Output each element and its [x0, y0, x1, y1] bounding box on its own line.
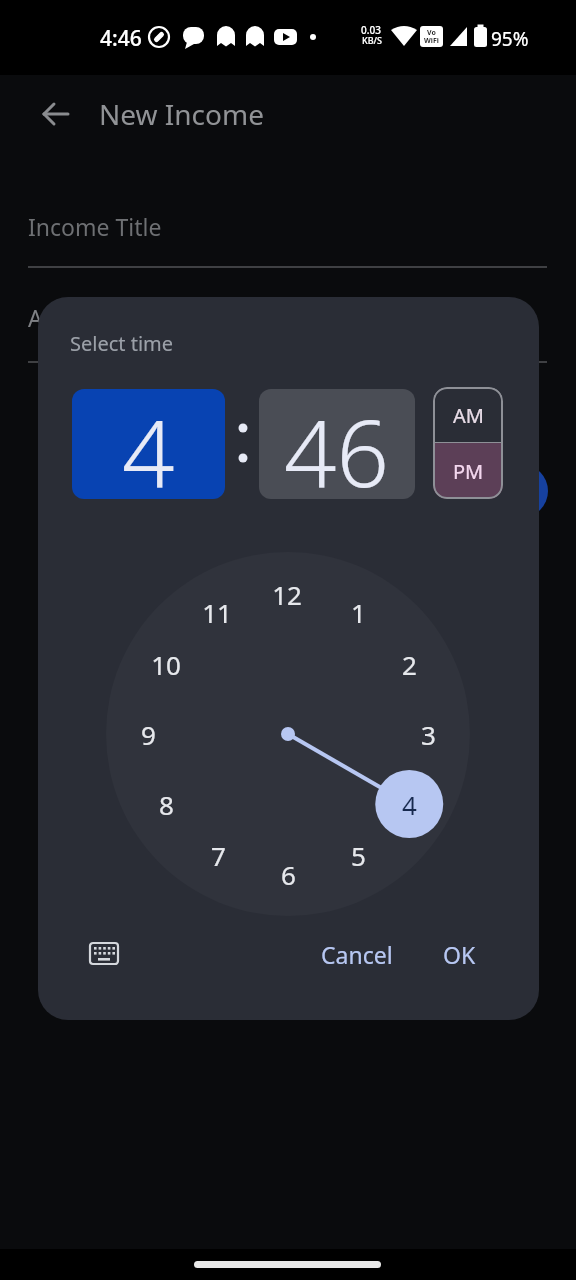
staticText: Income Title	[28, 211, 162, 242]
staticText: Vo WiFi	[424, 28, 439, 45]
staticText: 1	[351, 595, 366, 630]
staticText: PM	[453, 458, 484, 485]
staticText: KB/S	[362, 34, 382, 46]
staticText: 6	[281, 857, 296, 892]
staticText: 12	[272, 577, 302, 612]
staticText: 4	[122, 389, 175, 499]
button[interactable]: PM	[433, 443, 503, 499]
button[interactable]: Cancel	[281, 934, 433, 974]
staticText: AM	[453, 402, 484, 429]
staticText: Select time	[70, 330, 174, 357]
staticText: Amount	[28, 302, 115, 333]
staticText: 95%	[491, 26, 529, 52]
button[interactable]: 46	[259, 389, 415, 499]
button[interactable]	[494, 464, 548, 518]
staticText: 4:46	[100, 24, 142, 53]
staticText: 2	[402, 647, 417, 682]
staticText: Cancel	[321, 939, 393, 970]
button[interactable]: 4	[72, 389, 225, 499]
staticText: 0.03	[361, 23, 381, 37]
staticText: 9	[141, 717, 156, 752]
staticText: 10	[151, 647, 181, 682]
staticText: 8	[159, 787, 174, 822]
button[interactable]: OK	[429, 934, 489, 974]
staticText: New Income	[99, 95, 264, 133]
staticText: 4	[402, 787, 417, 822]
button[interactable]: AM	[433, 387, 503, 443]
staticText: 5	[351, 838, 366, 873]
button[interactable]	[78, 934, 130, 980]
staticText: 11	[202, 595, 232, 630]
staticText: 7	[211, 838, 226, 873]
button[interactable]	[28, 88, 80, 140]
staticText: 46	[284, 389, 390, 499]
staticText: 3	[421, 717, 436, 752]
staticText: OK	[443, 939, 476, 970]
